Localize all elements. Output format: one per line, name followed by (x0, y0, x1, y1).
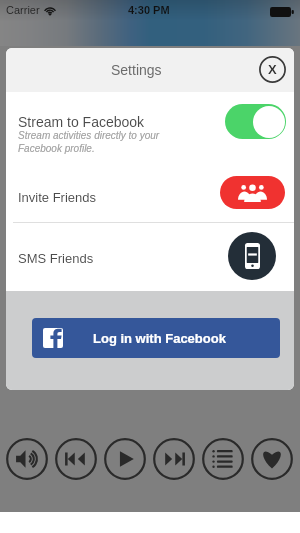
button[interactable]: Favourite (251, 438, 293, 480)
button[interactable]: Previous track (55, 438, 97, 480)
staticText: Stream to Facebook (18, 114, 145, 130)
button[interactable] (6, 92, 294, 166)
button[interactable]: SMS friends (228, 232, 276, 280)
staticText: 4:30 PM (128, 4, 170, 16)
button[interactable] (6, 166, 294, 222)
button[interactable]: Log in with Facebook (32, 318, 280, 358)
staticText: Settings (111, 62, 162, 78)
staticText: SMS Friends (18, 251, 94, 266)
staticText: Log in with Facebook (93, 331, 226, 346)
staticText: Invite Friends (18, 190, 97, 205)
button[interactable]: Play (104, 438, 146, 480)
staticText: X (268, 62, 277, 77)
button[interactable]: Volume (6, 438, 48, 480)
staticText: Stream activities directly to your Faceb… (18, 130, 170, 154)
button[interactable]: Close (259, 56, 286, 83)
button[interactable] (6, 223, 294, 291)
staticText: Carrier (6, 4, 40, 16)
button[interactable]: Next track (153, 438, 195, 480)
button[interactable]: Playlist (202, 438, 244, 480)
button[interactable]: Stream to Facebook toggle (225, 104, 286, 139)
button[interactable]: Invite friends (220, 176, 285, 209)
